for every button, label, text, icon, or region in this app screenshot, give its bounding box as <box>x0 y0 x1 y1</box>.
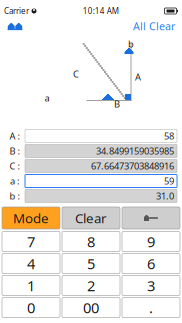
staticText: 59 <box>164 175 174 187</box>
staticText: 67.66473703848916 <box>91 160 174 172</box>
staticText: 1 <box>27 276 35 295</box>
staticText: 7 <box>27 232 35 251</box>
button[interactable]: 6 <box>122 253 180 273</box>
staticText: b : <box>9 190 20 202</box>
staticText: 5 <box>87 254 95 273</box>
button[interactable]: 34.8499159035985 <box>25 144 177 157</box>
staticText: C : <box>9 160 20 172</box>
button[interactable]: Triangle Solver <box>4 17 26 35</box>
button[interactable]: All Clear <box>130 17 178 35</box>
staticText: 10:14 AM <box>83 6 119 16</box>
button[interactable]: 2 <box>62 275 120 295</box>
staticText: B : <box>9 145 20 157</box>
staticText: 00 <box>83 298 99 317</box>
staticText: 9 <box>147 232 155 251</box>
button[interactable]: 5 <box>62 253 120 273</box>
staticText: 0 <box>27 298 35 317</box>
button[interactable]: 4 <box>2 253 60 273</box>
button[interactable]: Clear <box>62 207 120 229</box>
button[interactable]: Backspace <box>122 207 180 229</box>
staticText: Carrier <box>4 6 29 16</box>
staticText: a : <box>10 175 20 187</box>
button[interactable]: 1 <box>2 275 60 295</box>
staticText: A <box>135 71 141 83</box>
button[interactable]: 0 <box>2 297 60 317</box>
staticText: . <box>149 298 153 317</box>
staticText: Mode <box>13 209 49 227</box>
staticText: 3 <box>147 276 155 295</box>
button[interactable]: 67.66473703848916 <box>25 159 177 172</box>
button[interactable]: 58 <box>25 129 177 142</box>
button[interactable]: 59 <box>25 174 177 187</box>
button[interactable]: 31.0 <box>25 189 177 202</box>
button[interactable]: 7 <box>2 231 60 251</box>
staticText: 34.8499159035985 <box>96 145 174 157</box>
staticText: a <box>44 92 49 104</box>
button[interactable]: Mode <box>2 207 60 229</box>
button[interactable]: 9 <box>122 231 180 251</box>
button[interactable]: 3 <box>122 275 180 295</box>
staticText: 2 <box>87 276 95 295</box>
staticText: 58 <box>164 130 174 142</box>
staticText: C <box>73 68 79 80</box>
staticText: 6 <box>147 254 155 273</box>
button[interactable]: 8 <box>62 231 120 251</box>
staticText: B <box>114 98 120 110</box>
staticText: All Clear <box>133 19 175 33</box>
staticText: 8 <box>87 232 95 251</box>
staticText: 4 <box>27 254 35 273</box>
button[interactable]: . <box>122 297 180 317</box>
staticText: 31.0 <box>156 190 174 202</box>
button[interactable]: 00 <box>62 297 120 317</box>
staticText: b <box>128 38 134 50</box>
staticText: Clear <box>75 209 107 227</box>
staticText: A : <box>9 130 20 142</box>
